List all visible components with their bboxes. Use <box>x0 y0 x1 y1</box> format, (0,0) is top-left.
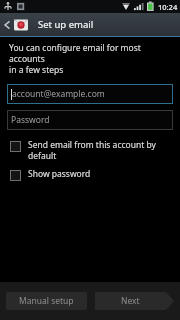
staticText: Next <box>121 295 140 307</box>
button[interactable]: Password <box>7 110 173 130</box>
staticText: account@example.com <box>12 88 105 100</box>
button[interactable]: Next <box>93 292 174 310</box>
button[interactable]: Navigate up <box>0 13 32 36</box>
staticText: Show password <box>28 168 91 180</box>
staticText: You can configure email for most account… <box>9 42 172 75</box>
button[interactable]: Show password <box>7 168 173 181</box>
staticText: Set up email <box>38 18 94 31</box>
staticText: Password <box>11 114 50 126</box>
button[interactable]: account@example.com <box>7 84 173 104</box>
button[interactable]: Manual setup <box>6 292 87 310</box>
staticText: Send email from this account by default <box>28 139 156 161</box>
staticText: 10:24 <box>158 2 178 12</box>
button[interactable]: Send email from this account by default <box>7 139 173 161</box>
staticText: Manual setup <box>19 295 74 307</box>
